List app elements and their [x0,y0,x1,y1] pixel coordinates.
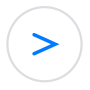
button[interactable]: Next [0,0,90,90]
